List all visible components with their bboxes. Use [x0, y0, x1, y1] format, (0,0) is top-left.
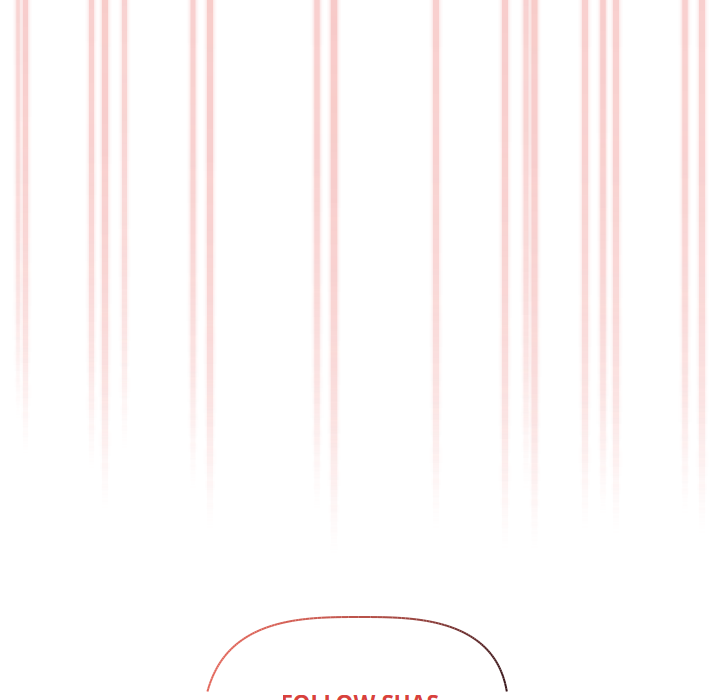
button[interactable]: FOLLOW SHAS — [0, 0, 720, 700]
staticText: FOLLOW SHAS — [280, 688, 438, 700]
